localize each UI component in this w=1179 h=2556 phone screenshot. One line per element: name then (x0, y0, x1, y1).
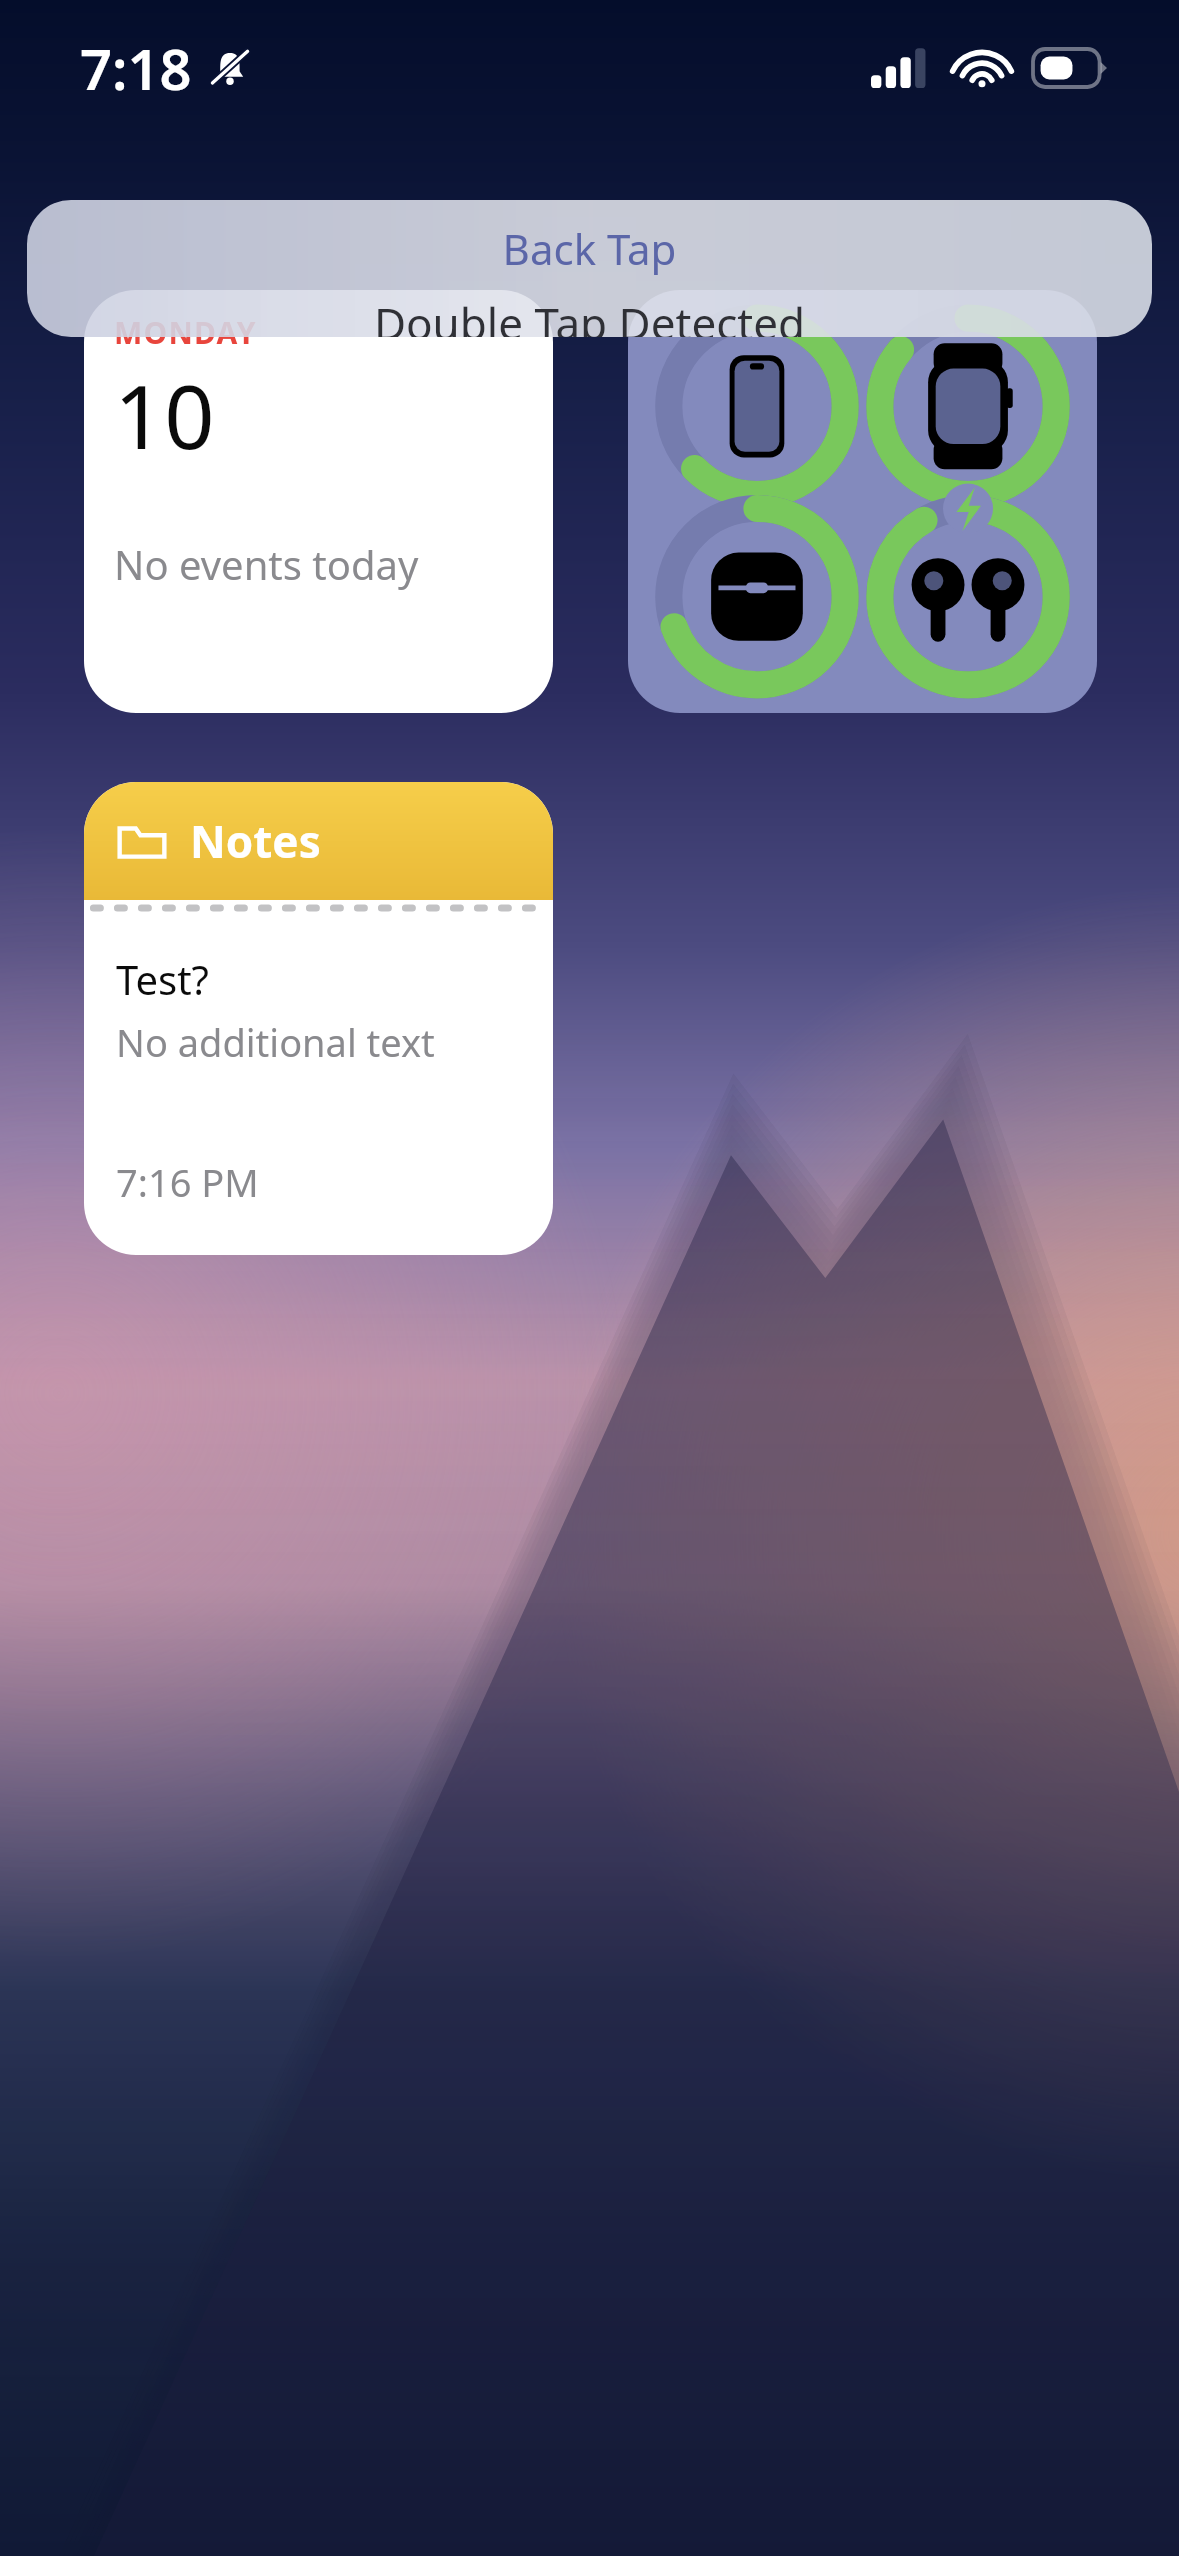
button[interactable]: Notes (84, 782, 553, 1255)
staticText: Back Tap (27, 220, 1152, 277)
button[interactable]: MONDAY (84, 290, 553, 713)
staticText: Test? (116, 952, 209, 1006)
staticText: Double Tap Detected (27, 293, 1152, 337)
staticText: Notes (190, 811, 321, 871)
staticText: No events today (114, 537, 419, 591)
staticText: 7:18 (80, 30, 192, 106)
button[interactable]: Back Tap (27, 200, 1152, 337)
button[interactable]: Batteries widget (628, 290, 1097, 713)
staticText: 7:16 PM (116, 1156, 259, 1208)
staticText: MONDAY (114, 312, 257, 353)
staticText: 10 (114, 355, 215, 475)
staticText: No additional text (116, 1016, 435, 1068)
